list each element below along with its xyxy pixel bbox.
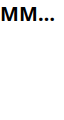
staticText: MMMMM bbox=[0, 0, 64, 27]
